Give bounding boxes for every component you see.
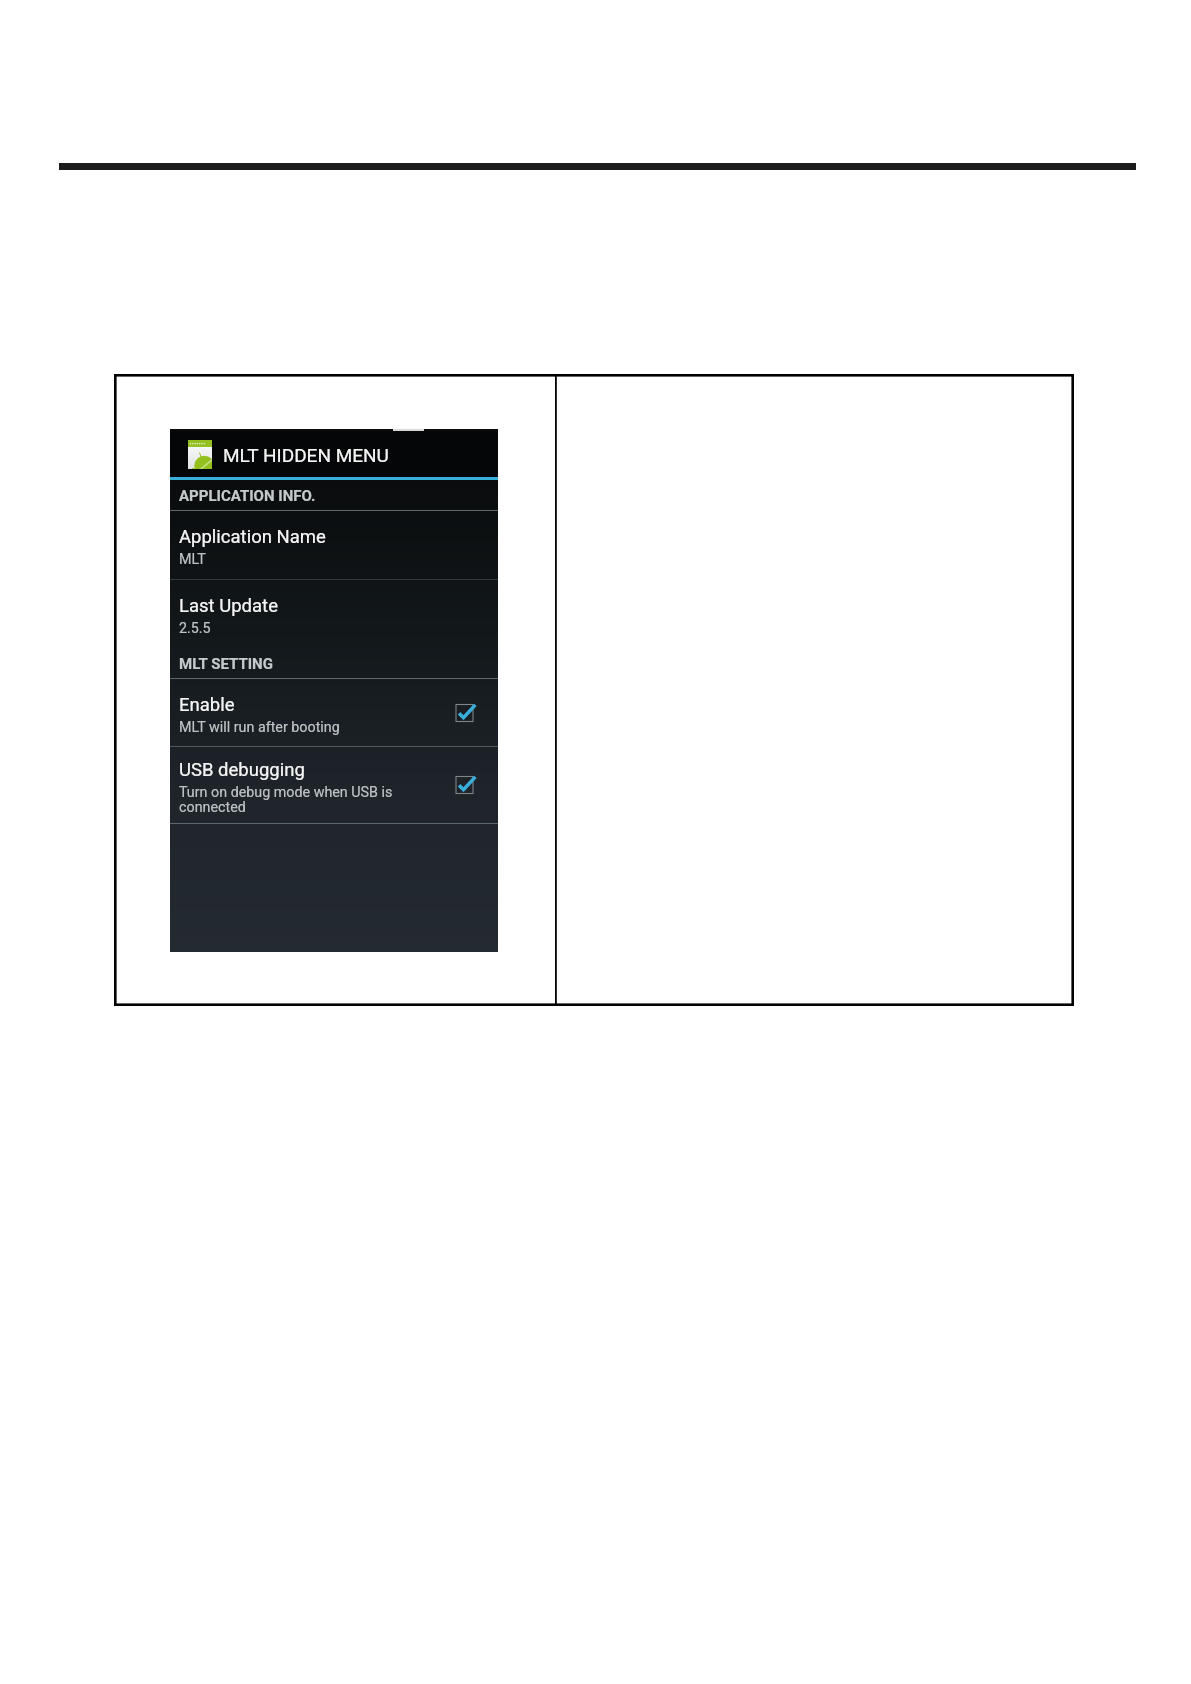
staticText: MLT — [179, 551, 206, 568]
button[interactable]: Last Update — [170, 580, 498, 647]
button[interactable]: Application Name — [170, 511, 498, 579]
staticText: MLT HIDDEN MENU — [223, 444, 389, 466]
staticText: MLT SETTING — [179, 655, 273, 673]
button[interactable]: Enable checkbox, checked — [452, 696, 486, 730]
other: MLT app icon — [188, 440, 212, 469]
staticText: 2.5.5 — [179, 620, 211, 637]
staticText: Application Name — [179, 526, 326, 548]
button[interactable]: USB debugging — [170, 747, 498, 823]
staticText: Enable — [179, 694, 235, 716]
staticText: APPLICATION INFO. — [179, 487, 316, 505]
staticText: USB debugging — [179, 759, 305, 781]
button[interactable]: Enable — [170, 679, 498, 746]
staticText: Turn on debug mode when USB is connected — [179, 784, 393, 815]
button[interactable]: MLT app icon — [170, 431, 498, 477]
staticText: Last Update — [179, 595, 278, 617]
staticText: MLT will run after booting — [179, 719, 340, 736]
button[interactable]: USB debugging checkbox, checked — [452, 768, 486, 802]
